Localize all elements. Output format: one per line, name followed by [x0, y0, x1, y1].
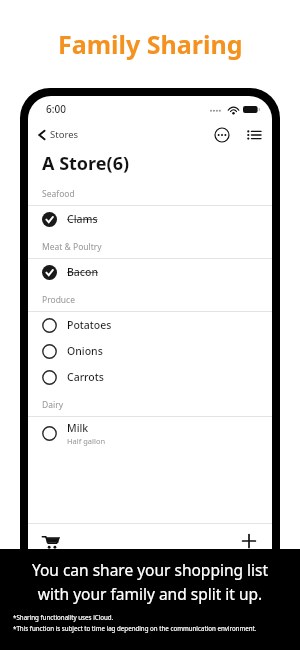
staticText: Meat & Poultry	[42, 241, 102, 253]
button[interactable]: List view	[246, 127, 262, 143]
staticText: Onions	[67, 344, 103, 358]
button[interactable]: Onions	[28, 338, 272, 364]
button[interactable]: Cart	[40, 531, 60, 551]
staticText: Bacon	[67, 265, 99, 279]
staticText: *Sharing functionality uses iCloud.	[13, 613, 114, 621]
button[interactable]: More options	[214, 127, 230, 143]
staticText: Half gallon	[67, 436, 106, 446]
staticText: You can share your shopping list	[0, 559, 300, 580]
staticText: Milk	[67, 421, 89, 435]
staticText: with your family and split it up.	[0, 583, 300, 604]
button[interactable]: Clams	[28, 206, 272, 232]
staticText: Dairy	[42, 399, 64, 411]
staticText: 6:00	[46, 102, 66, 116]
staticText: Seafood	[42, 188, 75, 200]
staticText: Clams	[67, 212, 98, 226]
staticText: Family Sharing	[58, 27, 243, 61]
staticText: *This function is subject to time lag de…	[13, 624, 257, 632]
button[interactable]: Carrots	[28, 364, 272, 390]
staticText: Carrots	[67, 370, 104, 384]
button[interactable]: Bacon	[28, 259, 272, 285]
button[interactable]: Add item	[238, 530, 260, 552]
button[interactable]: Stores	[38, 128, 79, 141]
button[interactable]: Milk	[28, 417, 272, 449]
staticText: A Store(6)	[42, 151, 130, 176]
button[interactable]: Potatoes	[28, 312, 272, 338]
staticText: Produce	[42, 294, 75, 306]
staticText: Stores	[50, 128, 79, 141]
staticText: Potatoes	[67, 318, 112, 332]
